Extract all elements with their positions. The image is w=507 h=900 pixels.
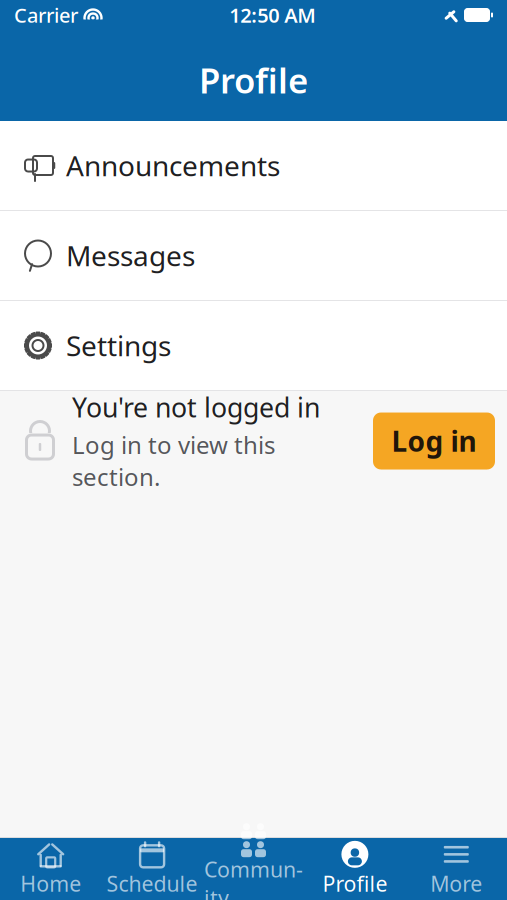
staticText: Schedule	[107, 869, 198, 898]
staticText: Profile	[322, 869, 387, 898]
staticText: You're not logged in	[72, 389, 320, 425]
staticText: More	[430, 869, 482, 898]
button[interactable]: Messages	[0, 211, 507, 300]
button[interactable]: Announcements	[0, 121, 507, 210]
staticText: Home	[20, 869, 81, 898]
staticText: Announcements	[66, 147, 280, 184]
button[interactable]: More	[406, 838, 507, 900]
button[interactable]: Profile	[304, 838, 406, 900]
staticText: 12:50 AM	[229, 2, 316, 28]
staticText: Settings	[66, 327, 171, 364]
staticText: Log in to view this section.	[72, 429, 275, 492]
button[interactable]: Schedule	[101, 838, 203, 900]
staticText: Carrier	[14, 2, 78, 28]
staticText: Profile	[199, 57, 308, 103]
button[interactable]: Community	[203, 838, 304, 900]
staticText: Community	[204, 855, 303, 900]
button[interactable]: Settings	[0, 301, 507, 390]
button[interactable]: Home	[0, 838, 101, 900]
staticText: Messages	[66, 237, 195, 274]
staticText: Log in	[391, 422, 476, 460]
button[interactable]: Log in	[373, 412, 495, 469]
